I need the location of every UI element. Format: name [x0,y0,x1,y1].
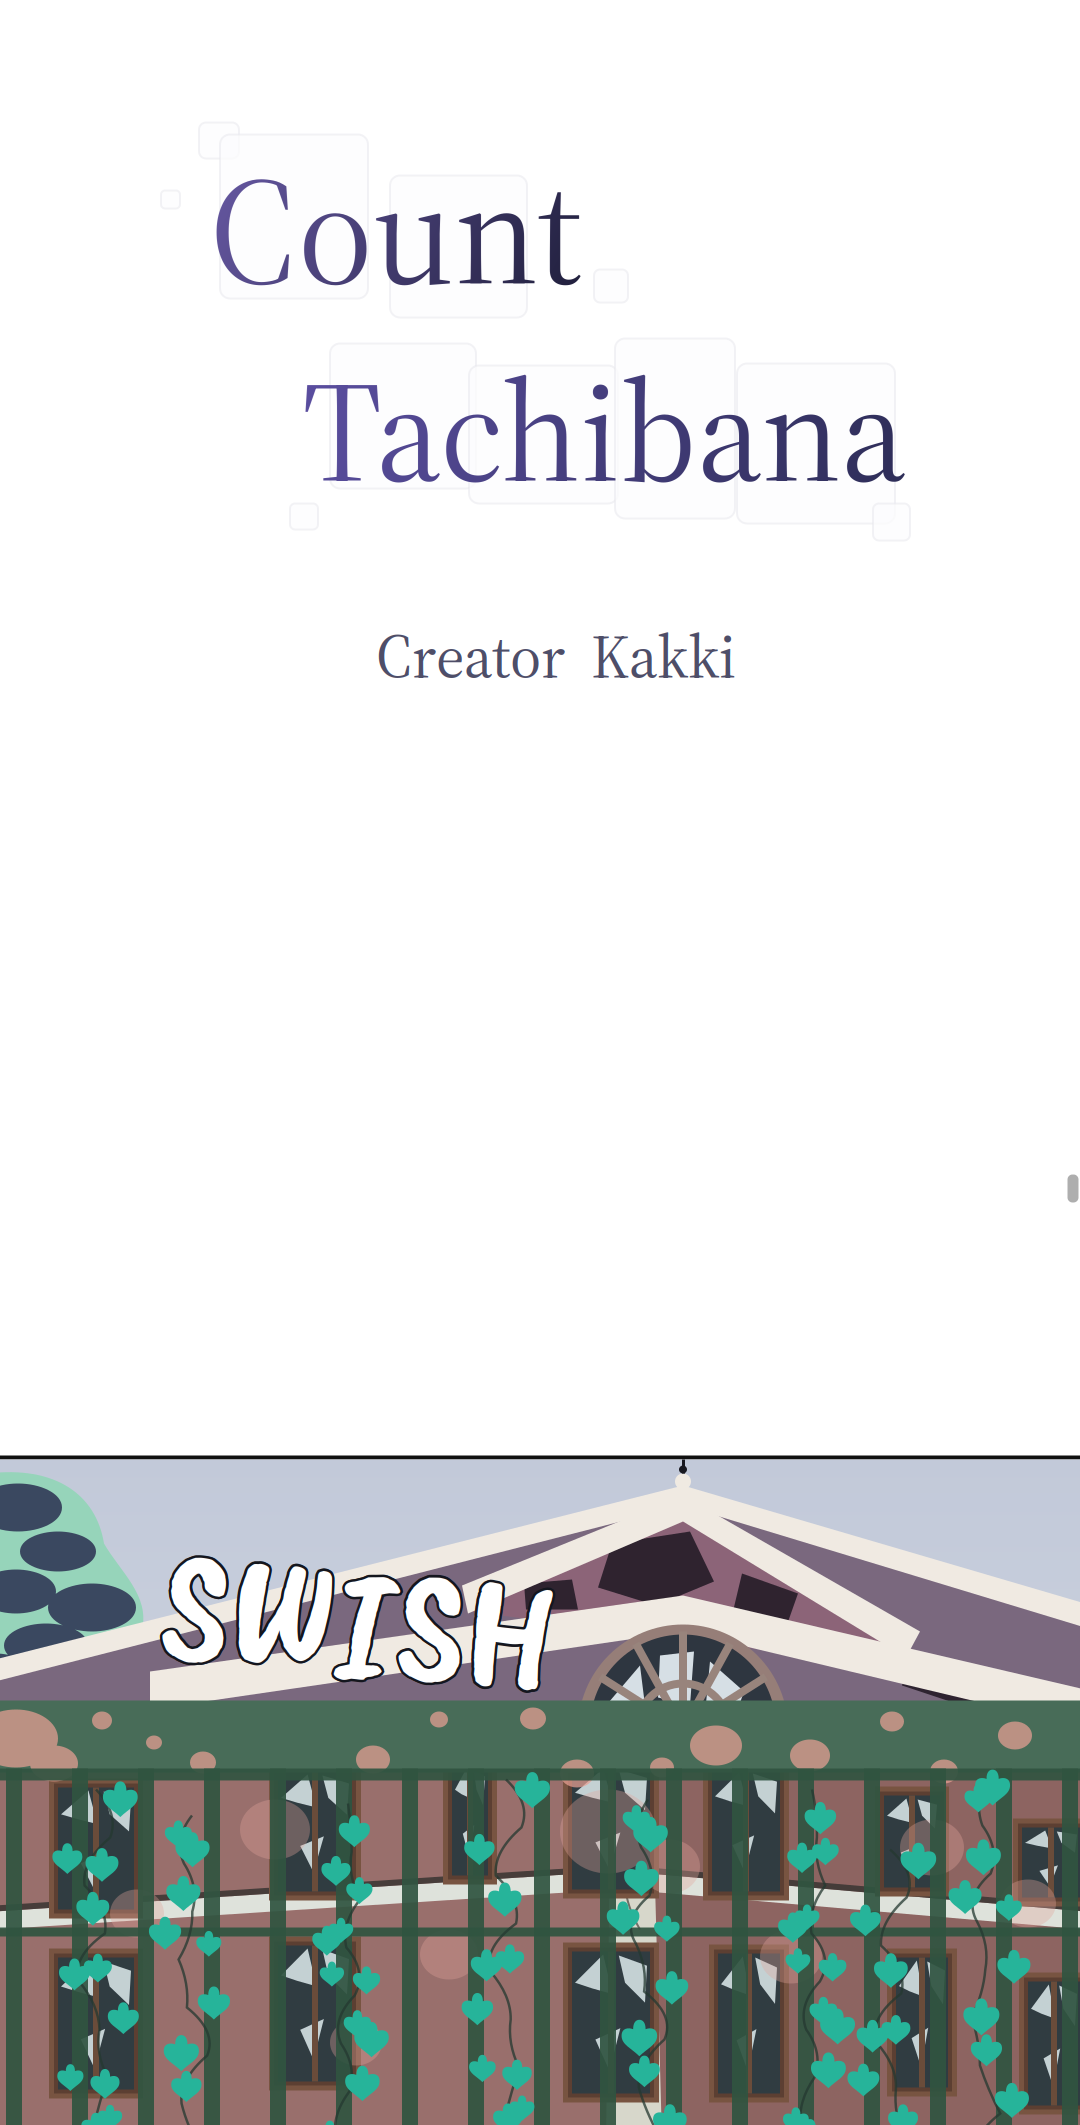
staticText: SWISH [164,1521,557,1722]
staticText: SWISH [161,1521,554,1722]
staticText: SWISH [160,1519,553,1720]
staticText: SWISH [160,1523,553,1724]
staticText: SWISH [163,1519,556,1720]
staticText: SWISH [161,1518,554,1720]
staticText: SWISH [159,1521,552,1722]
staticText: Creator Kakki [376,615,736,698]
staticText: SWISH [163,1523,556,1724]
staticText: SWISH [161,1523,554,1725]
